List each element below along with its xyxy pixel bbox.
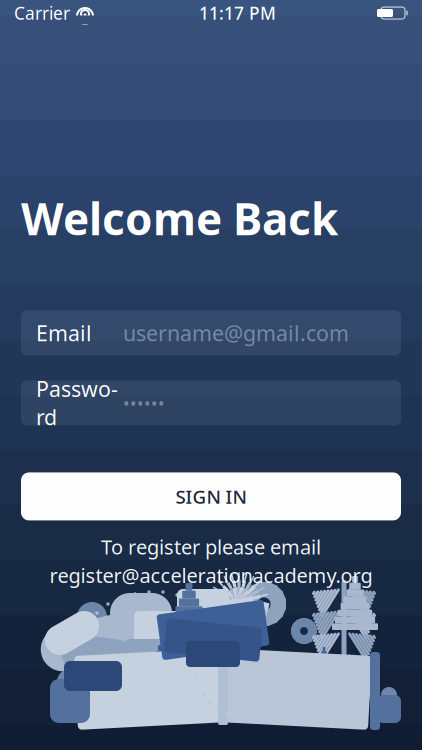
staticText: Welcome Back [21, 189, 338, 247]
button[interactable]: Email [21, 310, 401, 355]
staticText: Password [36, 375, 118, 431]
staticText: To register please email [101, 533, 321, 560]
staticText: •••••• [123, 391, 165, 414]
staticText: Email [36, 319, 92, 347]
button[interactable]: Password [21, 380, 401, 425]
staticText: register@accelerationacademy.org [49, 562, 372, 589]
staticText: 11:17 PM [199, 1, 276, 24]
staticText: Carrier [14, 1, 70, 24]
staticText: SIGN IN [175, 484, 246, 509]
button[interactable]: To register please email [21, 533, 401, 588]
button[interactable]: SIGN IN [21, 472, 401, 520]
staticText: username@gmail.com [123, 319, 349, 347]
